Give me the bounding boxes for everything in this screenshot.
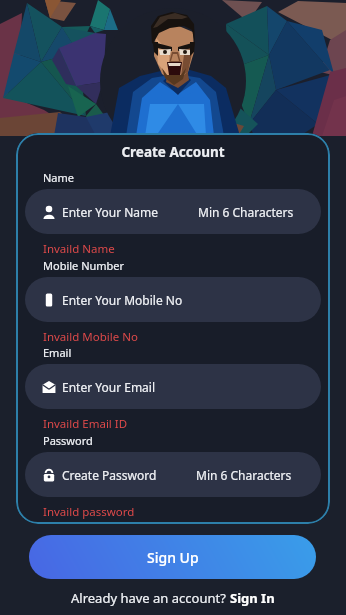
button[interactable]: Mobile Number (25, 277, 321, 322)
other: Email (42, 380, 56, 394)
staticText: Create Password (62, 467, 157, 483)
button[interactable]: Sign In (230, 589, 275, 607)
staticText: Mobile Number (43, 258, 125, 273)
staticText: Invaild Mobile No (43, 329, 138, 345)
staticText: Invaild Email ID (43, 416, 128, 432)
other: Password (42, 468, 56, 482)
staticText: Invaild password (43, 504, 135, 520)
staticText: Password (43, 433, 93, 448)
staticText: Enter Your Email (62, 379, 156, 395)
staticText: Invaild Name (43, 241, 115, 257)
button[interactable]: Name (25, 189, 321, 234)
staticText: Enter Your Name (62, 204, 159, 220)
staticText: Sign In (230, 589, 275, 607)
staticText: Create Account (16, 143, 330, 161)
other: Mobile Number (42, 293, 56, 307)
button[interactable]: Password (25, 452, 321, 497)
staticText: Already have an account? (71, 589, 230, 607)
staticText: Enter Your Mobile No (62, 292, 183, 308)
button[interactable]: Sign Up (29, 535, 316, 579)
staticText: Min 6 Characters (196, 467, 292, 483)
staticText: Email (43, 345, 72, 360)
staticText: Sign Up (147, 548, 199, 567)
button[interactable]: Email (25, 364, 321, 409)
other: Name (42, 205, 56, 219)
staticText: Min 6 Characters (198, 204, 294, 220)
staticText: Name (43, 170, 75, 185)
